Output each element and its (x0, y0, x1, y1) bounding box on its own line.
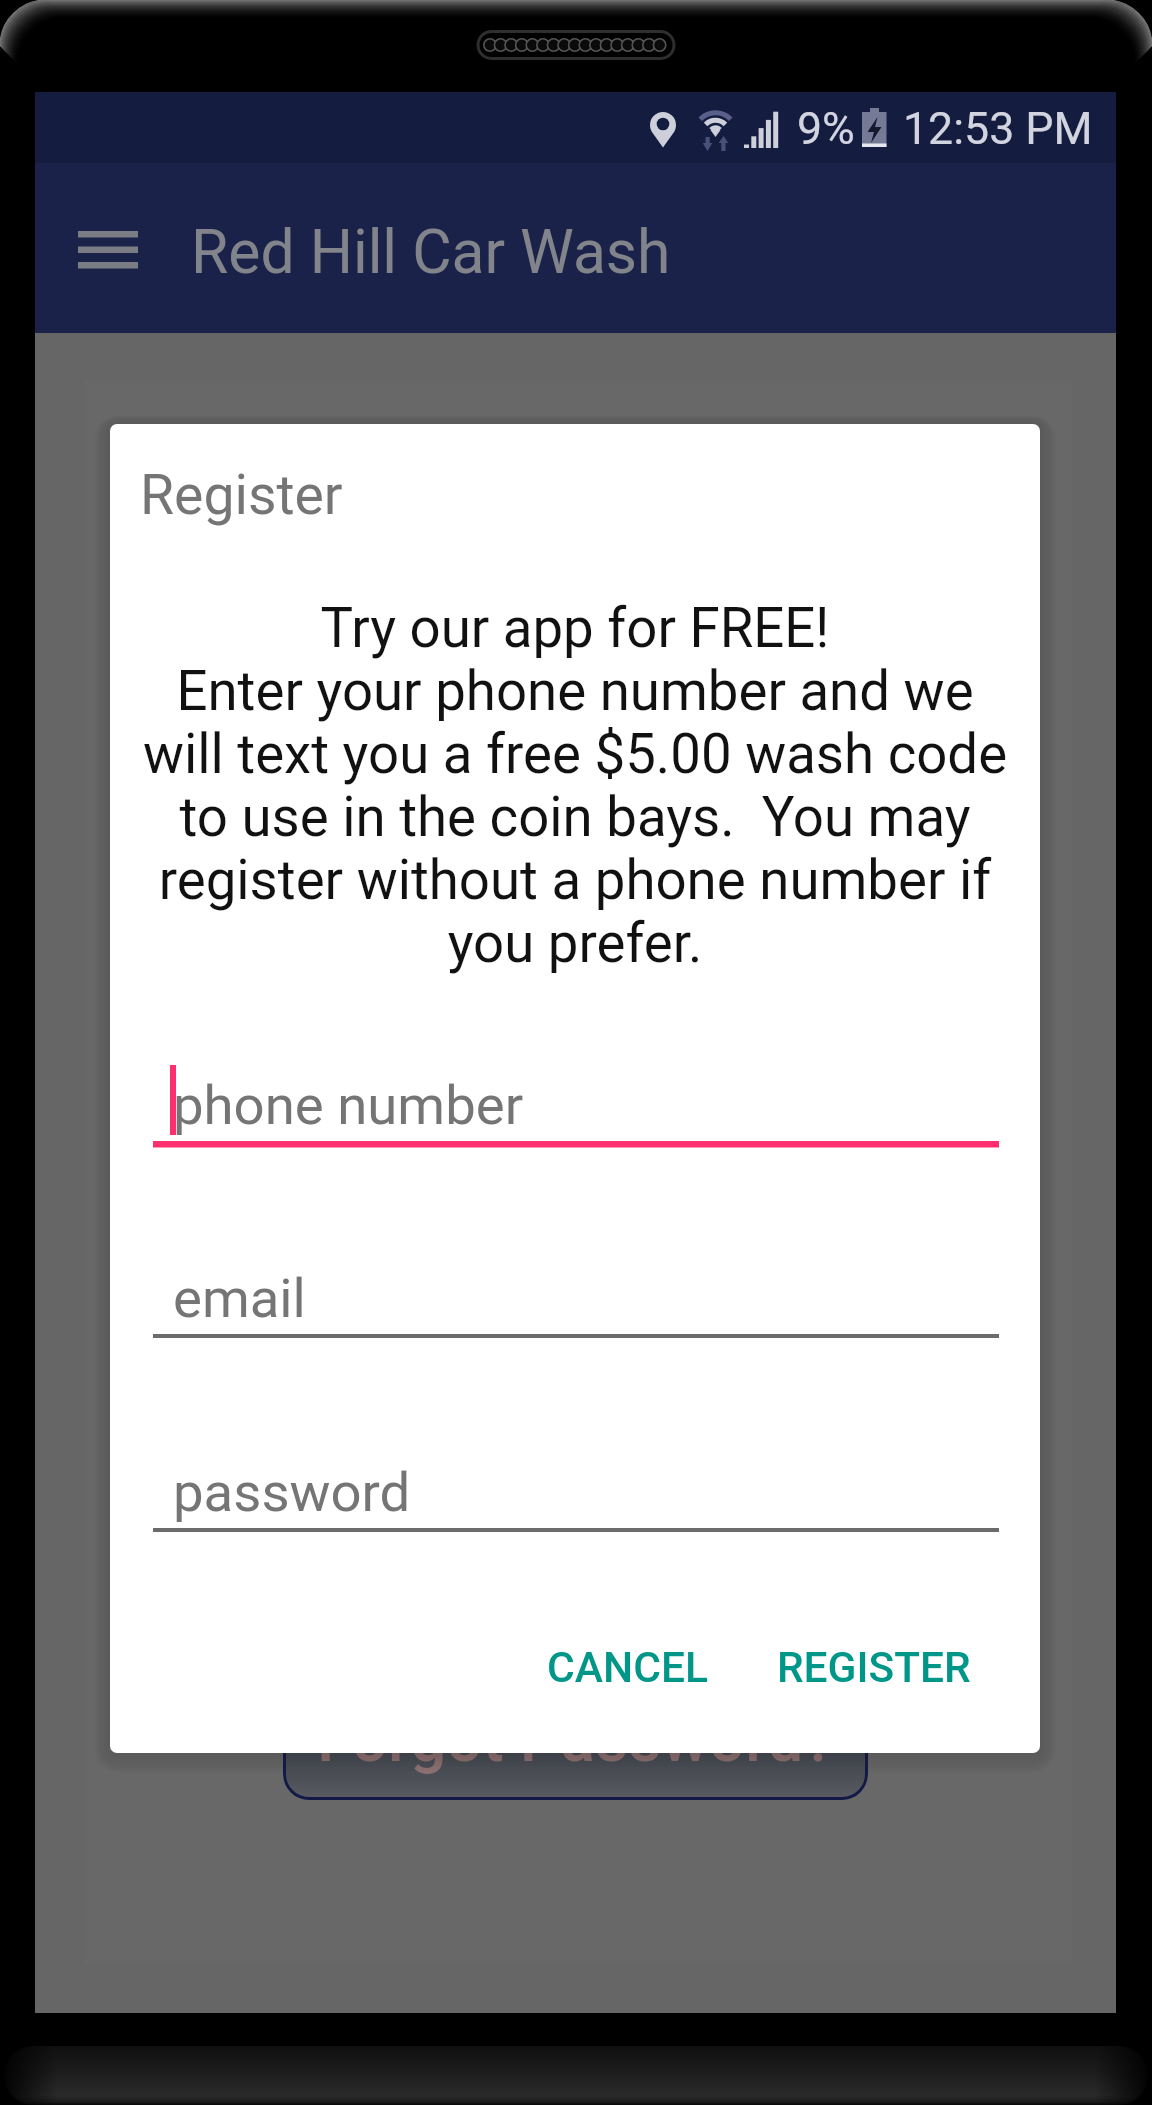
staticText: 12:53 PM (903, 103, 1093, 155)
staticText: email (173, 1266, 306, 1330)
button[interactable]: Forgot Password? (283, 1690, 868, 1800)
staticText: phone number (173, 1073, 524, 1137)
button[interactable]: CANCEL (521, 1627, 735, 1709)
staticText: Red Hill Car Wash (191, 217, 671, 288)
staticText: Forgot Password? (317, 1702, 835, 1777)
staticText: Try our app for FREE! Enter your phone n… (110, 596, 1040, 976)
staticText: 9% (797, 103, 855, 155)
button[interactable]: phone number (153, 1053, 999, 1148)
button[interactable]: password (153, 1440, 999, 1535)
staticText: CANCEL (547, 1643, 709, 1693)
staticText: REGISTER (777, 1643, 971, 1693)
staticText: password (173, 1460, 411, 1524)
staticText: Register (140, 463, 343, 528)
button[interactable]: email (153, 1246, 999, 1341)
button[interactable]: Open navigation menu (58, 199, 158, 299)
button[interactable]: REGISTER (751, 1627, 997, 1709)
